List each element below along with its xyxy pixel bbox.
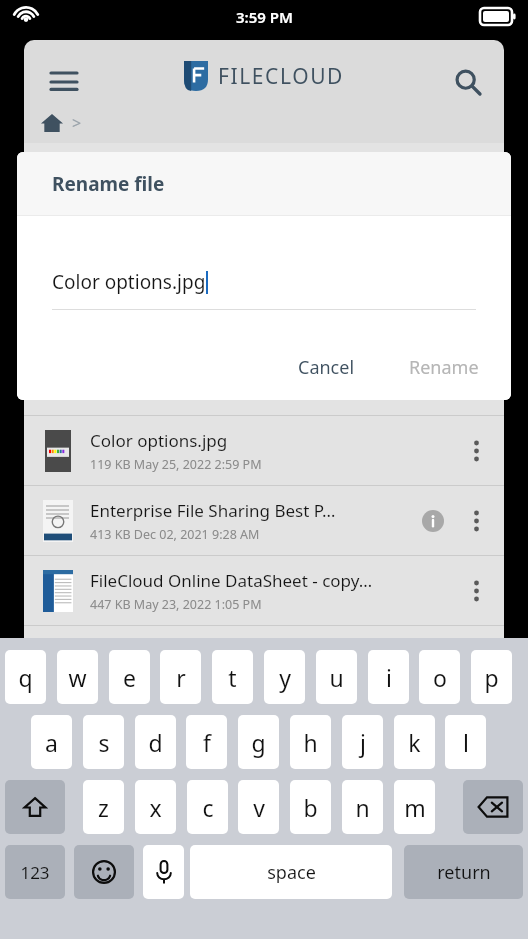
staticText: Cancel [298,355,355,380]
button[interactable]: Emoji [74,845,134,899]
button[interactable]: Rename [393,345,495,390]
staticText: Rename file [52,171,165,197]
button[interactable]: m [394,780,435,834]
staticText: w [68,662,87,693]
button[interactable]: f [186,715,227,769]
staticText: y [279,662,291,693]
staticText: k [408,727,421,758]
staticText: i [386,662,392,693]
button[interactable]: q [5,650,46,704]
button[interactable]: x [135,780,176,834]
staticText: h [303,727,318,758]
button[interactable]: Menu [44,62,84,102]
button[interactable]: g [238,715,279,769]
staticText: u [329,662,344,693]
button[interactable]: Enterprise File Sharing Best P… [24,486,504,555]
staticText: v [253,792,265,823]
staticText: j [360,727,366,758]
staticText: Color options.jpg [52,269,206,295]
staticText: e [123,662,136,693]
staticText: 447 KB May 23, 2022 1:05 PM [90,596,262,613]
staticText: b [303,792,318,823]
button[interactable]: 123 [5,845,65,899]
staticText: r [176,662,186,693]
button[interactable]: h [290,715,331,769]
staticText: 3:59 PM [236,7,293,27]
staticText: 123 [20,861,50,884]
button[interactable]: i [368,650,409,704]
button[interactable]: t [212,650,253,704]
staticText: q [18,662,33,693]
button[interactable]: More options [456,501,496,541]
button[interactable]: Backspace [463,780,523,834]
staticText: c [202,792,214,823]
staticText: 413 KB Dec 02, 2021 9:28 AM [90,526,260,543]
button[interactable]: o [419,650,460,704]
staticText: return [437,860,491,885]
staticText: Rename [409,355,479,380]
staticText: Enterprise File Sharing Best P… [90,499,336,522]
button[interactable]: FileCloud Online DataSheet - copy… [24,556,504,625]
staticText: FileCloud Online DataSheet - copy… [90,569,373,592]
button[interactable]: Shift [5,780,65,834]
staticText: z [98,792,109,823]
button[interactable]: Color options.jpg [24,416,504,485]
button[interactable]: d [135,715,176,769]
button[interactable]: v [238,780,279,834]
staticText: x [149,792,162,823]
button[interactable]: z [83,780,124,834]
button[interactable]: u [316,650,357,704]
button[interactable]: a [31,715,72,769]
button[interactable]: More options [456,571,496,611]
button[interactable]: w [57,650,98,704]
button[interactable]: space [190,845,392,899]
button[interactable]: j [342,715,383,769]
button[interactable]: n [342,780,383,834]
staticText: a [45,727,58,758]
staticText: l [463,727,469,758]
button[interactable]: c [187,780,228,834]
staticText: > [72,112,82,134]
staticText: space [267,860,316,885]
button[interactable]: Info [416,504,450,538]
button[interactable]: b [290,780,331,834]
staticText: f [203,727,211,758]
button[interactable]: k [394,715,435,769]
button[interactable]: Cancel [282,345,371,390]
button[interactable]: return [404,845,523,899]
button[interactable]: r [160,650,201,704]
button[interactable]: More options [456,431,496,471]
button[interactable]: l [445,715,486,769]
button[interactable]: p [471,650,512,704]
button[interactable]: s [83,715,124,769]
button[interactable]: Dictate [143,845,184,899]
staticText: s [98,727,110,758]
staticText: 119 KB May 25, 2022 2:59 PM [90,456,262,473]
staticText: n [355,792,370,823]
staticText: m [404,792,426,823]
staticText: FILECLOUD [218,62,345,91]
staticText: d [148,727,163,758]
button[interactable]: Search [448,62,488,102]
staticText: t [228,662,237,693]
button[interactable]: e [109,650,150,704]
button[interactable]: y [264,650,305,704]
staticText: o [433,662,447,693]
staticText: Color options.jpg [90,429,228,452]
staticText: p [484,662,499,693]
staticText: g [251,727,266,758]
